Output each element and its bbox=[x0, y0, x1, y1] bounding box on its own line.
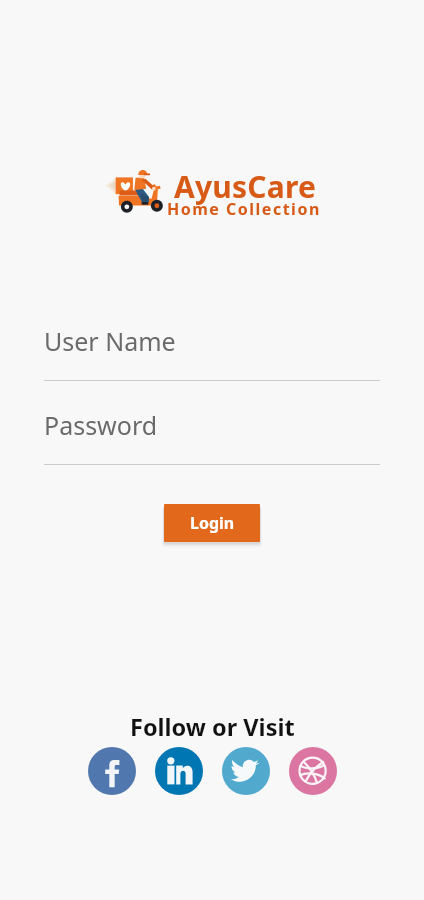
button[interactable]: Twitter bbox=[222, 747, 270, 795]
button[interactable]: Password bbox=[44, 408, 380, 465]
button[interactable]: Dribbble bbox=[289, 747, 337, 795]
staticText: Login bbox=[190, 512, 235, 534]
staticText: Home Collection bbox=[167, 198, 321, 220]
button[interactable]: LinkedIn bbox=[155, 747, 203, 795]
staticText: AyusCare bbox=[174, 166, 316, 207]
button[interactable]: Facebook bbox=[88, 747, 136, 795]
staticText: Follow or Visit bbox=[130, 711, 295, 743]
button[interactable]: User Name bbox=[44, 324, 380, 381]
staticText: User Name bbox=[44, 324, 176, 358]
staticText: Password bbox=[44, 408, 158, 442]
button[interactable]: Login bbox=[164, 504, 260, 542]
